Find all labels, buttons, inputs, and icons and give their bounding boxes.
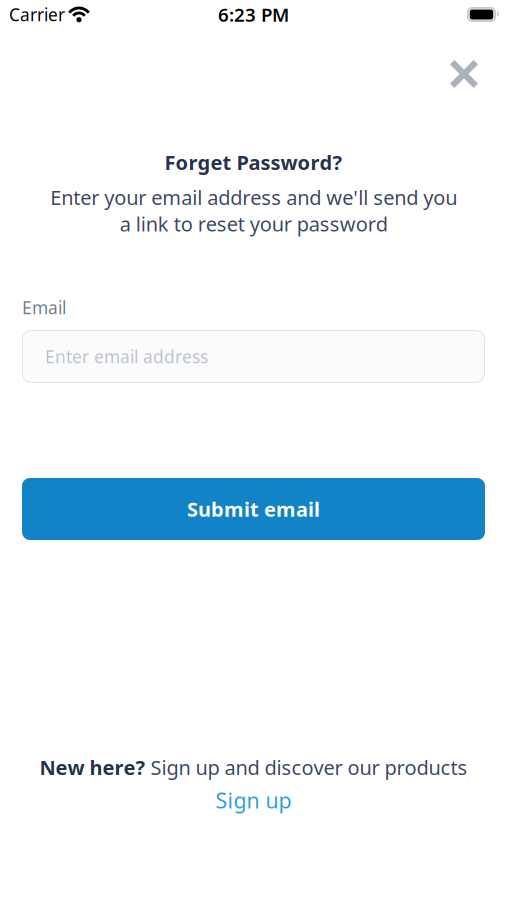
staticText: Carrier: [9, 3, 65, 26]
staticText: Forget Password?: [164, 149, 342, 176]
button[interactable]: Close: [449, 59, 479, 89]
staticText: Enter email address: [45, 345, 208, 368]
staticText: Email: [22, 296, 66, 319]
button[interactable]: Submit email: [22, 478, 485, 540]
staticText: Submit email: [187, 496, 320, 522]
staticText: 6:23 PM: [218, 2, 289, 27]
staticText: Enter your email address and we'll send …: [50, 184, 457, 237]
staticText: Sign up: [215, 786, 291, 814]
button[interactable]: Sign up: [215, 786, 291, 814]
staticText: New here?: [39, 754, 145, 781]
staticText: Sign up and discover our products: [145, 754, 467, 781]
